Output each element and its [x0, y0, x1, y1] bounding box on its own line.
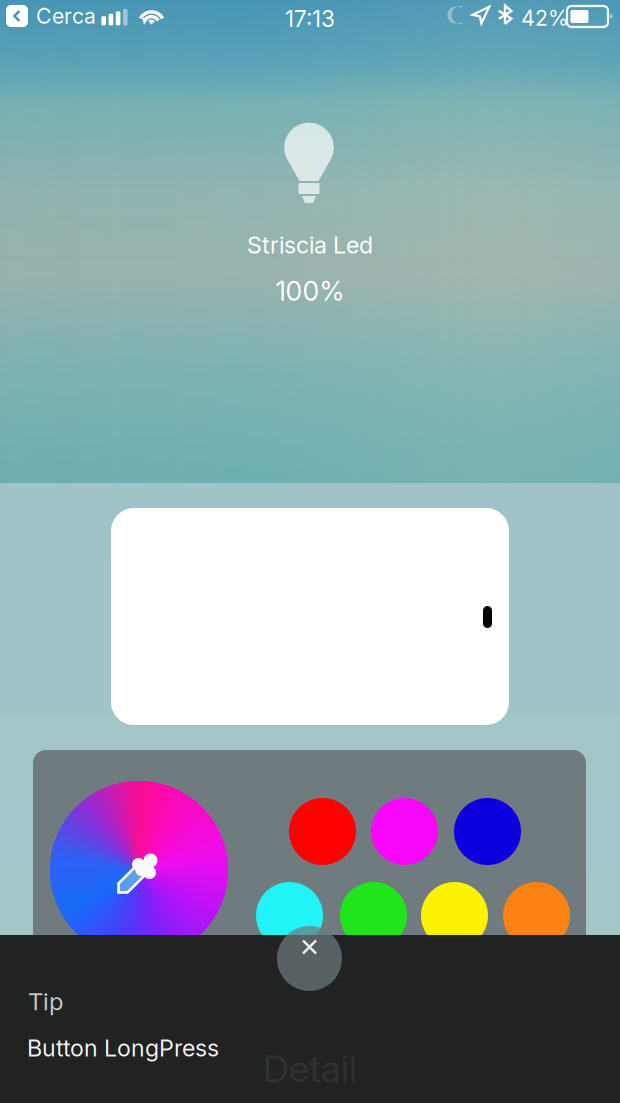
button[interactable]: Colour swatch	[256, 882, 323, 949]
staticText: Cerca	[36, 3, 96, 29]
button[interactable]: Colour swatch	[340, 882, 407, 949]
staticText: Button LongPress	[27, 1034, 219, 1062]
staticText: 100%	[275, 275, 344, 307]
button[interactable]: Cerca	[0, 1, 100, 31]
button[interactable]: Colour swatch	[289, 798, 356, 865]
button[interactable]: Colour swatch	[454, 798, 521, 865]
button[interactable]: Colour swatch	[421, 882, 488, 949]
button[interactable]: Colour swatch	[503, 882, 570, 949]
staticText: Striscia Led	[247, 231, 373, 259]
staticText: 42%	[521, 5, 569, 31]
button[interactable]: Close	[277, 926, 342, 991]
staticText: Detail	[263, 1046, 357, 1091]
staticText: Tip	[28, 987, 63, 1016]
button[interactable]: Colour swatch	[371, 798, 438, 865]
staticText: 17:13	[285, 5, 335, 32]
